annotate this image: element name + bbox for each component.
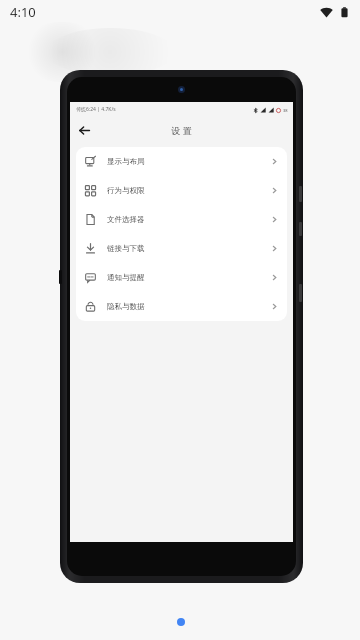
staticText: 通知与提醒 xyxy=(107,273,145,282)
button[interactable]: 文件选择器 xyxy=(76,205,287,234)
button[interactable]: 显示与布局 xyxy=(76,147,287,176)
staticText: 行为与权限 xyxy=(107,186,145,195)
staticText: 隐私与数据 xyxy=(107,302,145,311)
button[interactable]: 隐私与数据 xyxy=(76,292,287,321)
staticText: 文件选择器 xyxy=(107,215,145,224)
button[interactable]: 链接与下载 xyxy=(76,234,287,263)
staticText: 38 xyxy=(283,108,288,113)
button[interactable]: Back xyxy=(75,121,93,139)
staticText: 链接与下载 xyxy=(107,244,145,253)
staticText: 4:10 xyxy=(10,3,36,21)
button[interactable]: 行为与权限 xyxy=(76,176,287,205)
staticText: 显示与布局 xyxy=(107,157,145,166)
button[interactable]: 通知与提醒 xyxy=(76,263,287,292)
staticText: 传统6:24 | 4.7K/s xyxy=(76,106,116,113)
staticText: 设 置 xyxy=(171,124,192,136)
